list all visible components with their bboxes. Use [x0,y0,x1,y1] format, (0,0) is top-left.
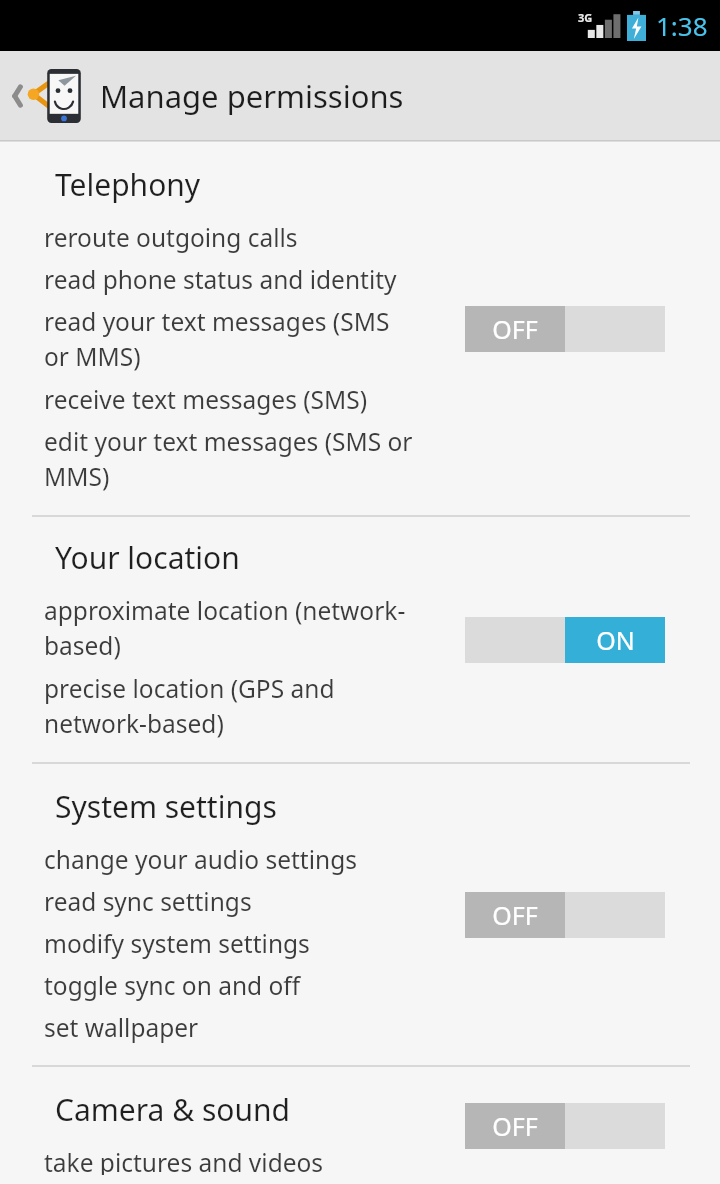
button[interactable]: Permission off [465,1103,665,1149]
staticText: Telephony [55,164,201,205]
staticText: OFF [492,898,538,932]
staticText: 1:38 [656,8,708,43]
staticText: OFF [492,1109,538,1143]
staticText: reroute outgoing calls [44,221,414,254]
staticText: Your location [55,537,240,578]
staticText: System settings [55,786,277,827]
staticText: OFF [492,312,538,346]
button[interactable]: Navigate up [0,51,720,140]
staticText: set wallpaper [44,1011,414,1044]
staticText: approximate location (network-based) [44,594,414,663]
staticText: edit your text messages (SMS or MMS) [44,425,414,494]
staticText: receive text messages (SMS) [44,383,414,416]
staticText: read sync settings [44,885,414,918]
staticText: change your audio settings [44,843,414,876]
staticText: precise location (GPS and network-based) [44,672,414,741]
staticText: ON [596,623,635,657]
staticText: read phone status and identity [44,263,414,296]
staticText: 3G [578,10,593,25]
staticText: modify system settings [44,927,414,960]
button[interactable]: Permission off [465,306,665,352]
staticText: read your text messages (SMS or MMS) [44,305,414,374]
other: Navigate up [6,76,26,116]
staticText: Camera & sound [55,1089,290,1130]
button[interactable]: Permission off [465,892,665,938]
button[interactable]: Permission on [465,617,665,663]
staticText: Manage permissions [100,75,404,117]
staticText: take pictures and videos [44,1146,414,1175]
staticText: toggle sync on and off [44,969,414,1002]
